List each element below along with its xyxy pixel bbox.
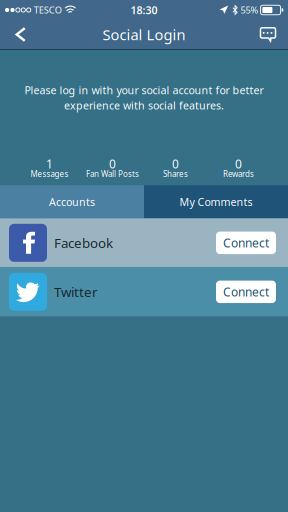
staticText: Rewards: [223, 168, 254, 179]
staticText: My Comments: [179, 195, 252, 209]
staticText: 55%: [241, 4, 259, 16]
staticText: Shares: [163, 168, 188, 179]
button[interactable]: Messages: [253, 20, 283, 49]
button[interactable]: Back: [5, 20, 37, 49]
staticText: Facebook: [54, 234, 113, 252]
staticText: Please log in with your social account f…: [24, 83, 263, 97]
button[interactable]: Accounts: [0, 185, 144, 218]
staticText: Social Login: [102, 25, 185, 44]
button[interactable]: My Comments: [144, 185, 288, 218]
staticText: Accounts: [49, 195, 95, 209]
staticText: Messages: [30, 168, 68, 179]
staticText: experience with social features.: [64, 98, 224, 112]
staticText: Twitter: [54, 283, 98, 301]
staticText: 0: [109, 156, 116, 172]
staticText: Connect: [223, 235, 269, 251]
staticText: 0: [235, 156, 242, 172]
staticText: 0: [172, 156, 179, 172]
staticText: Fan Wall Posts: [86, 168, 139, 179]
staticText: Connect: [223, 284, 269, 300]
staticText: 1: [46, 156, 53, 172]
staticText: TESCO: [34, 4, 62, 16]
staticText: 18:30: [130, 3, 157, 17]
button[interactable]: Facebook: [0, 218, 288, 267]
button[interactable]: Twitter: [0, 267, 288, 316]
